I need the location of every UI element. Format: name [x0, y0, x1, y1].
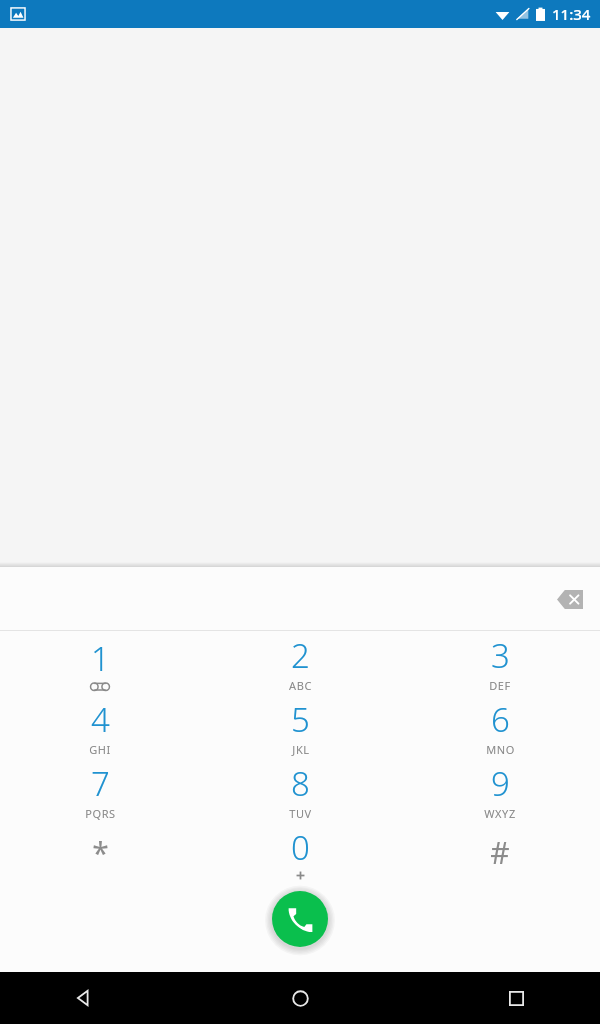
staticText: TUV	[289, 806, 312, 821]
button[interactable]: Delete	[548, 577, 592, 621]
button[interactable]: Home	[276, 974, 324, 1022]
button[interactable]: 0	[200, 823, 400, 883]
staticText: JKL	[292, 742, 310, 757]
staticText: MNO	[486, 742, 515, 757]
staticText: 11:34	[552, 4, 591, 24]
staticText: #	[490, 832, 510, 873]
staticText: 4	[91, 697, 110, 742]
button[interactable]: 7	[0, 759, 200, 823]
button[interactable]: 2	[200, 631, 400, 695]
button[interactable]: 5	[200, 695, 400, 759]
staticText: PQRS	[85, 806, 116, 821]
staticText: 8	[291, 761, 310, 806]
staticText: 5	[291, 697, 310, 742]
staticText: 0	[291, 825, 310, 870]
staticText: ABC	[289, 678, 312, 693]
button[interactable]: 8	[200, 759, 400, 823]
staticText: 6	[491, 697, 510, 742]
staticText: 7	[91, 761, 110, 806]
button[interactable]: 9	[400, 759, 600, 823]
button[interactable]: Call	[272, 891, 328, 947]
staticText: WXYZ	[484, 806, 516, 821]
staticText: 3	[491, 633, 510, 678]
staticText: GHI	[89, 742, 111, 757]
button[interactable]: 4	[0, 695, 200, 759]
button[interactable]: Back	[60, 974, 108, 1022]
button[interactable]: 3	[400, 631, 600, 695]
button[interactable]: #	[400, 823, 600, 883]
staticText: DEF	[489, 678, 511, 693]
button[interactable]: Recent apps	[492, 974, 540, 1022]
staticText: 9	[491, 761, 510, 806]
staticText: 2	[291, 633, 310, 678]
staticText: *	[92, 832, 109, 873]
staticText: 1	[91, 636, 110, 681]
button[interactable]: 6	[400, 695, 600, 759]
button[interactable]: 1	[0, 631, 200, 695]
button[interactable]: *	[0, 823, 200, 883]
